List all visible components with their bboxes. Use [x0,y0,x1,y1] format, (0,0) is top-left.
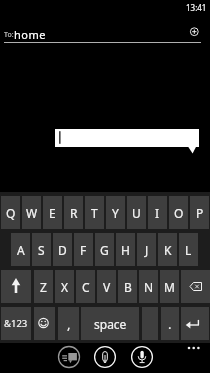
staticText: L [185,242,192,258]
button[interactable]: &123 [1,307,31,340]
staticText: I [155,205,160,221]
staticText: P [196,205,204,221]
button[interactable]: P [190,196,209,229]
staticText: S [38,242,45,258]
button[interactable] [55,129,199,147]
staticText: Y [112,205,119,221]
staticText: home [14,27,46,42]
button[interactable]: Q [1,196,20,229]
staticText: F [80,242,87,258]
staticText: &123 [4,317,28,330]
button[interactable]: A [11,233,30,266]
staticText: B [124,279,132,295]
staticText: U [132,205,141,221]
button[interactable]: O [169,196,188,229]
button[interactable]: , [58,307,79,340]
button[interactable]: C [76,270,95,303]
button[interactable] [1,270,31,303]
button[interactable] [181,307,209,340]
button[interactable]: J [137,233,156,266]
staticText: space [94,316,127,332]
button[interactable] [183,340,207,356]
button[interactable]: I [148,196,167,229]
button[interactable]: S [32,233,51,266]
button[interactable]: V [97,270,116,303]
button[interactable]: D [53,233,72,266]
staticText: , [67,315,71,333]
staticText: R [70,205,78,221]
button[interactable] [181,270,210,303]
staticText: V [103,279,111,295]
button[interactable]: L [179,233,198,266]
staticText: To: [4,30,14,40]
staticText: D [58,242,67,258]
button[interactable]: E [43,196,62,229]
staticText: G [100,242,109,258]
button[interactable] [186,23,203,40]
button[interactable] [58,346,80,368]
staticText: E [49,205,56,221]
staticText: A [17,242,25,258]
button[interactable]: F [74,233,93,266]
staticText: M [164,279,175,295]
button[interactable]: Y [106,196,125,229]
staticText: W [26,205,38,221]
staticText: H [121,242,130,258]
staticText: C [82,279,90,295]
button[interactable] [34,307,55,340]
button[interactable]: . [161,307,179,340]
button[interactable]: space [81,307,139,340]
button[interactable]: T [85,196,104,229]
staticText: T [91,205,98,221]
button[interactable]: B [118,270,137,303]
button[interactable]: N [139,270,158,303]
button[interactable] [131,346,153,368]
button[interactable]: Z [34,270,53,303]
button[interactable]: G [95,233,114,266]
staticText: K [164,242,172,258]
button[interactable]: U [127,196,146,229]
button[interactable] [94,346,116,368]
staticText: Z [40,279,47,295]
staticText: O [174,205,184,221]
button[interactable]: R [64,196,83,229]
staticText: X [61,279,69,295]
button[interactable]: M [160,270,179,303]
staticText: Q [6,205,16,221]
button[interactable]: H [116,233,135,266]
staticText: N [144,279,154,295]
button[interactable]: K [158,233,177,266]
staticText: J [145,242,149,258]
staticText: . [168,315,172,333]
button[interactable] [0,24,210,43]
button[interactable]: X [55,270,74,303]
staticText: 13:41 [186,2,207,13]
button[interactable]: W [22,196,41,229]
